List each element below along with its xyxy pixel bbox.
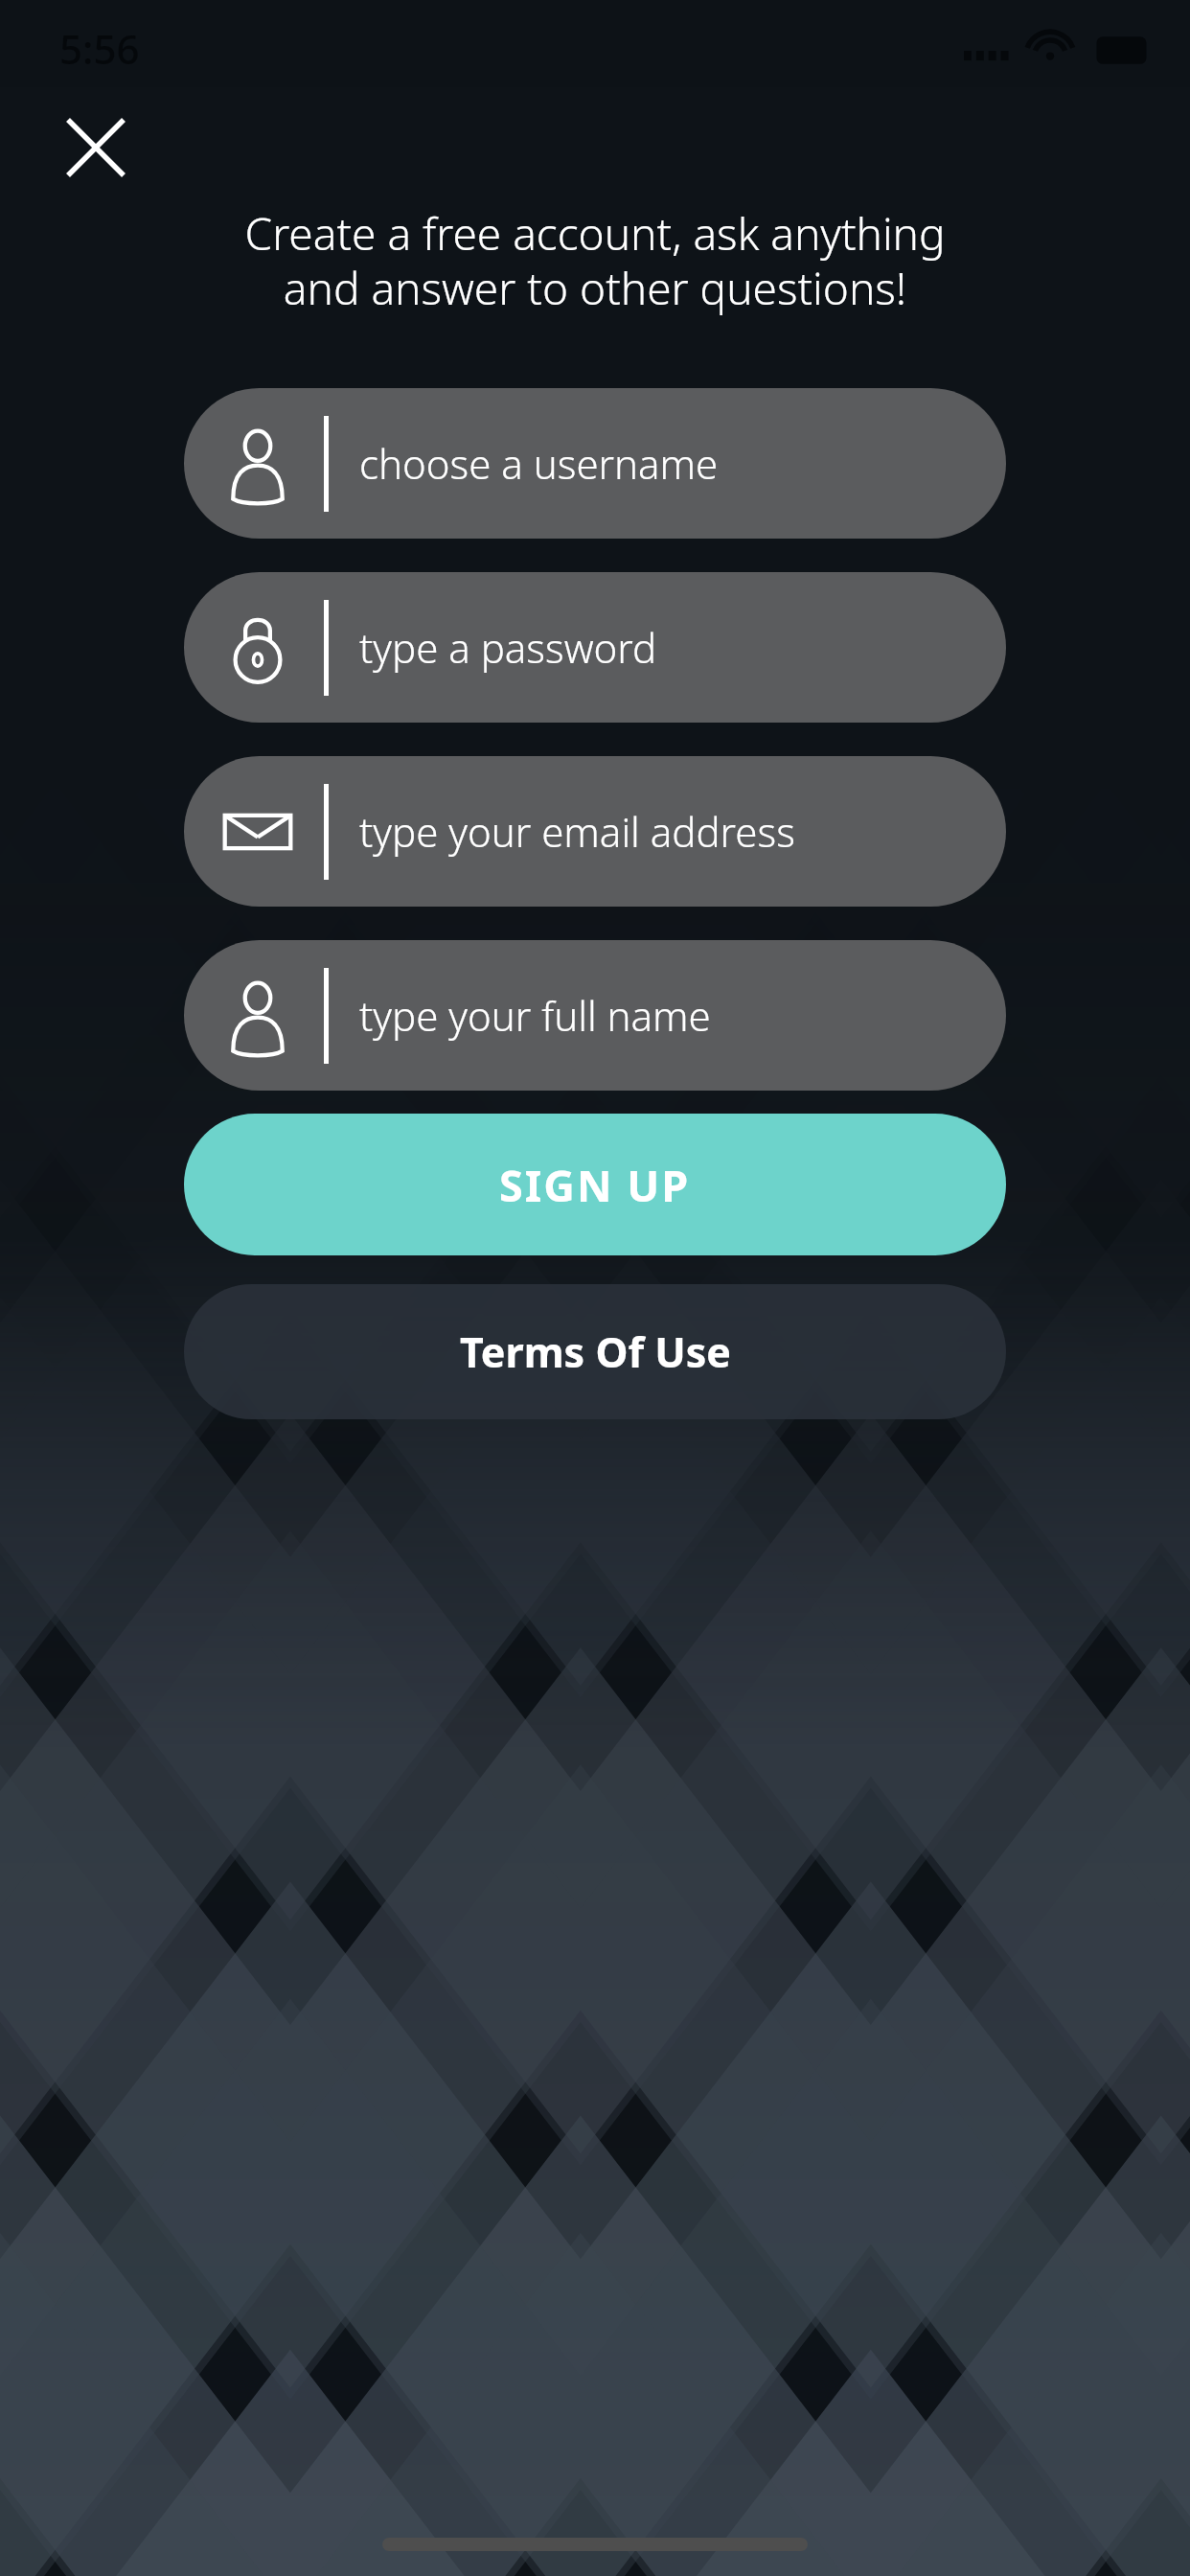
staticText: type your email address [359,804,795,859]
button[interactable]: type a password [184,572,1006,723]
button[interactable]: choose a username [184,388,1006,539]
staticText: 5:56 [59,21,140,76]
staticText: SIGN UP [499,1156,691,1214]
staticText: type a password [359,620,657,675]
staticText: Terms Of Use [460,1323,731,1380]
staticText: type your full name [359,988,711,1043]
button[interactable]: SIGN UP [184,1114,1006,1255]
button[interactable]: type your email address [184,756,1006,907]
button[interactable]: Terms Of Use [184,1284,1006,1419]
staticText: choose a username [359,436,719,491]
button[interactable]: type your full name [184,940,1006,1091]
button[interactable]: Close [36,88,155,207]
staticText: Create a free account, ask anything and … [92,203,1098,317]
